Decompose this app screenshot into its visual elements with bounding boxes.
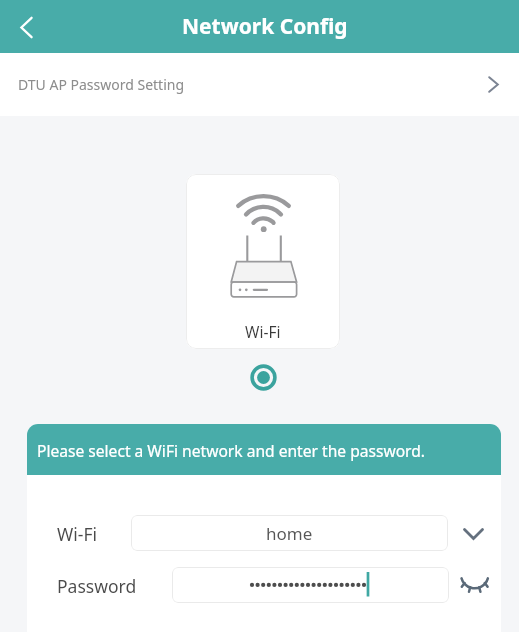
staticText: Please select a WiFi network and enter t… (37, 440, 426, 461)
staticText: home (266, 522, 313, 545)
button[interactable] (172, 567, 449, 603)
button[interactable]: home (131, 515, 448, 551)
staticText: Network Config (182, 12, 348, 41)
button[interactable]: Wi-Fi (186, 174, 340, 349)
staticText: Wi-Fi (245, 321, 281, 342)
button[interactable]: DTU AP Password Setting (0, 53, 519, 116)
button[interactable]: Wi-Fi option selected (250, 364, 277, 391)
staticText: DTU AP Password Setting (18, 75, 185, 94)
staticText: Wi-Fi (57, 522, 98, 546)
button[interactable]: Back (4, 5, 48, 49)
staticText: Password (57, 574, 137, 598)
button[interactable]: Choose Wi-Fi network (451, 512, 495, 556)
button[interactable]: Show password (453, 563, 497, 607)
